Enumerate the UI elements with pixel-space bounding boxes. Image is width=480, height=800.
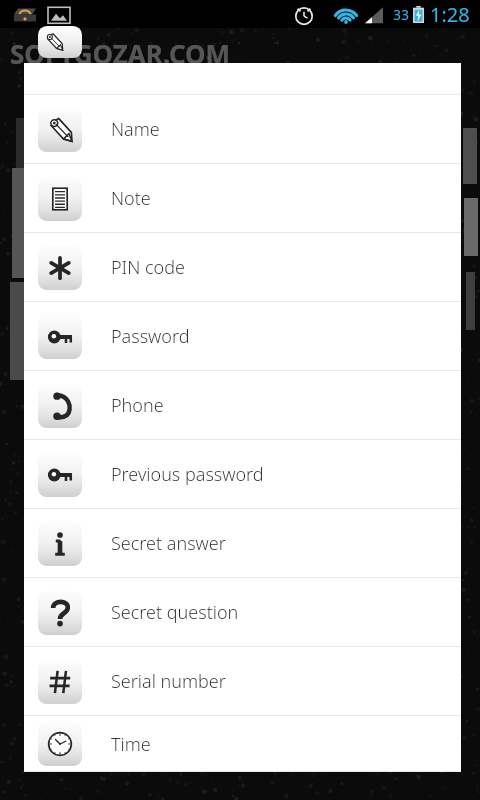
button[interactable]: PIN code [24, 233, 461, 302]
staticText: Secret question [111, 600, 239, 625]
button[interactable]: Secret answer [24, 509, 461, 578]
staticText: Previous password [111, 462, 264, 487]
button[interactable]: Time [24, 716, 461, 772]
staticText: 33 [393, 5, 410, 24]
staticText: PIN code [111, 255, 185, 280]
staticText: Password [111, 324, 190, 349]
button[interactable]: Password [24, 302, 461, 371]
button[interactable]: Name [24, 95, 461, 164]
staticText: Secret answer [111, 531, 226, 556]
button[interactable]: Serial number [24, 647, 461, 716]
staticText: اولین ارائه دهنده نرم افزار ایران [34, 71, 480, 89]
button[interactable]: Previous password [24, 440, 461, 509]
staticText: Serial number [111, 669, 226, 694]
button[interactable]: Secret question [24, 578, 461, 647]
staticText: Name [111, 117, 160, 142]
staticText: Phone [111, 393, 164, 418]
staticText: Time [111, 732, 151, 757]
button[interactable]: Phone [24, 371, 461, 440]
staticText: 1:28 [430, 1, 470, 28]
staticText: Note [111, 186, 151, 211]
staticText: SOFTGOZAR.COM [10, 36, 480, 71]
button[interactable]: Note [24, 164, 461, 233]
